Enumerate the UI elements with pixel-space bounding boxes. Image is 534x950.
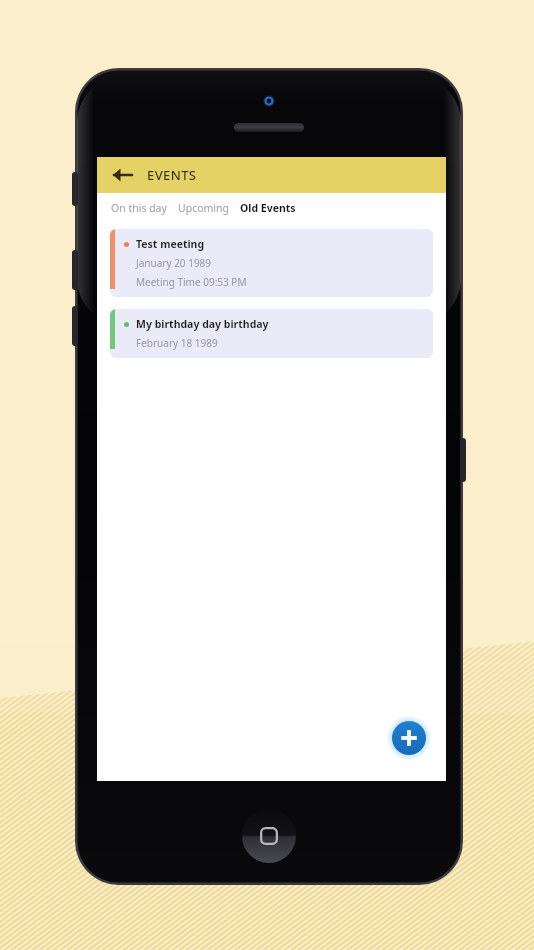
button[interactable]: Add event bbox=[386, 715, 432, 761]
button[interactable]: On this day bbox=[110, 199, 168, 217]
staticText: Old Events bbox=[240, 201, 296, 215]
staticText: February 18 1989 bbox=[136, 336, 218, 350]
staticText: On this day bbox=[111, 201, 167, 215]
button[interactable]: Back bbox=[107, 160, 137, 190]
button[interactable]: Test meeting bbox=[110, 229, 433, 297]
staticText: January 20 1989 bbox=[136, 256, 212, 270]
staticText: EVENTS bbox=[147, 166, 197, 184]
button[interactable]: Old Events bbox=[239, 199, 297, 217]
staticText: Meeting Time 09:53 PM bbox=[136, 275, 247, 289]
staticText: Upcoming bbox=[178, 201, 229, 215]
staticText: My birthday day birthday bbox=[136, 317, 269, 331]
button[interactable]: Upcoming bbox=[177, 199, 230, 217]
button[interactable]: Home bbox=[242, 809, 296, 863]
button[interactable]: My birthday day birthday bbox=[110, 309, 433, 358]
staticText: Test meeting bbox=[136, 237, 205, 251]
